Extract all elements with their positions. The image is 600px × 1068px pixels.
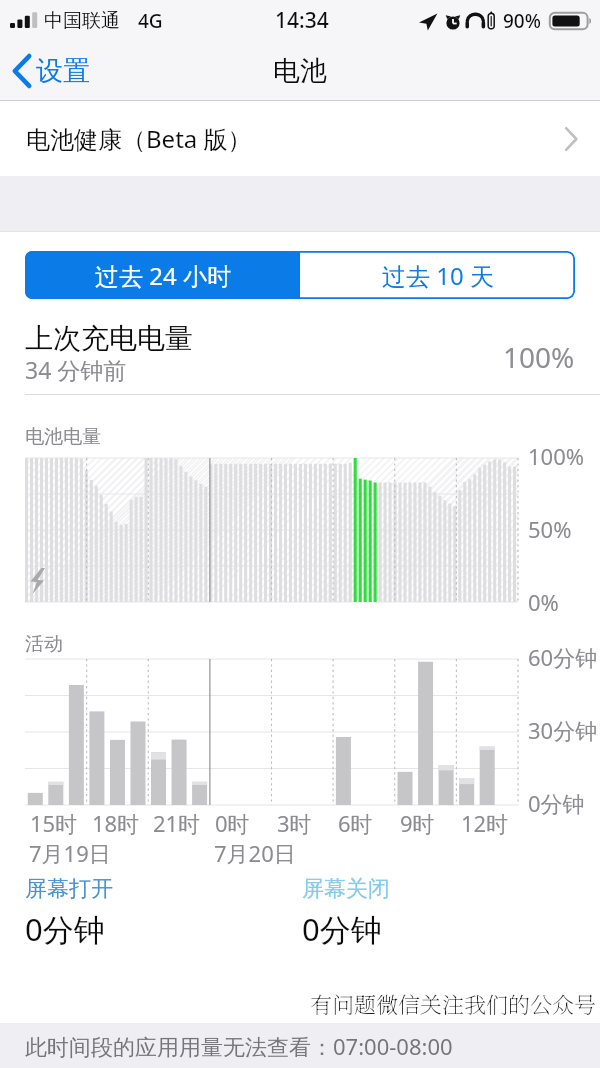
staticText: 100% (528, 441, 585, 471)
other: 电池健康 (564, 126, 578, 152)
button[interactable]: 电池健康（Beta 版） (0, 101, 600, 176)
staticText: 18时 (92, 808, 140, 838)
staticText: 21时 (153, 808, 201, 838)
staticText: 100% (503, 338, 575, 376)
staticText: 电池电量 (25, 425, 101, 449)
staticText: 0分钟 (25, 908, 105, 950)
button[interactable]: 过去 24 小时 (25, 251, 300, 299)
staticText: 12时 (461, 808, 509, 838)
staticText: 6时 (338, 808, 373, 838)
staticText: 过去 24 小时 (95, 259, 231, 292)
staticText: 14:34 (275, 6, 329, 35)
button[interactable]: 过去 10 天 (300, 251, 575, 299)
staticText: 7月19日 (29, 838, 111, 868)
staticText: 上次充电电量 (25, 321, 193, 356)
staticText: 30分钟 (528, 715, 598, 745)
staticText: 7月20日 (214, 838, 296, 868)
staticText: 0分钟 (528, 788, 585, 818)
button[interactable]: 设置 (12, 41, 90, 101)
staticText: 有问题微信关注我们的公众号 (310, 988, 597, 1020)
staticText: 屏幕关闭 (302, 875, 390, 903)
staticText: 60分钟 (528, 642, 598, 672)
staticText: 活动 (25, 632, 63, 656)
staticText: 0% (528, 587, 559, 617)
staticText: 电池 (273, 54, 327, 88)
staticText: 34 分钟前 (25, 354, 127, 385)
staticText: 过去 10 天 (382, 259, 494, 292)
staticText: 9时 (400, 808, 435, 838)
staticText: 90% (503, 8, 541, 34)
staticText: 0分钟 (302, 908, 382, 950)
staticText: 设置 (36, 54, 90, 88)
staticText: 屏幕打开 (25, 875, 113, 903)
staticText: 此时间段的应用用量无法查看：07:00-08:00 (25, 1031, 453, 1061)
staticText: 中国联通 (44, 9, 120, 33)
staticText: 50% (528, 514, 572, 544)
staticText: 电池健康（Beta 版） (26, 122, 252, 155)
staticText: 3时 (277, 808, 312, 838)
staticText: 15时 (30, 808, 78, 838)
staticText: 4G (138, 8, 163, 34)
staticText: 0时 (215, 808, 250, 838)
